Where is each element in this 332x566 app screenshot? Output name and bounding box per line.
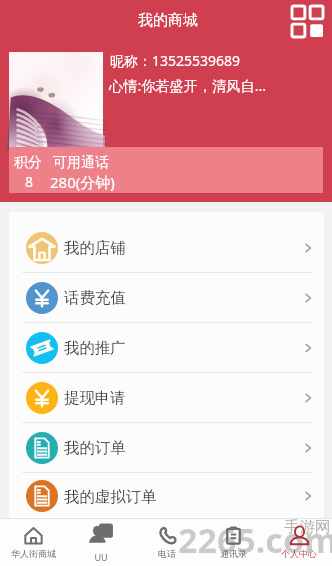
staticText: 通讯录 [220,548,247,559]
button[interactable]: Profile photo [9,52,103,147]
staticText: 我的推广 [64,338,126,357]
button[interactable]: 电话 [134,518,200,566]
button[interactable]: 话费充值 [9,273,324,322]
button[interactable]: 通讯录 [200,518,266,566]
staticText: 积分 [14,154,42,172]
button[interactable]: UU [67,518,134,566]
button[interactable]: 我的虚拟订单 [9,473,324,519]
staticText: 我的订单 [64,438,126,457]
staticText: 我的商城 [2,11,332,30]
staticText: 我的店铺 [64,238,126,257]
button[interactable]: Grid menu [292,6,323,37]
staticText: UU [94,551,108,563]
button[interactable]: 我的订单 [9,423,324,472]
button[interactable]: 个人中心 [266,518,332,566]
staticText: 个人中心 [281,548,317,559]
staticText: 2265.com [178,517,332,563]
staticText: 昵称：13525539689 [110,51,241,70]
staticText: 我的虚拟订单 [64,487,157,506]
staticText: 280(分钟) [50,172,115,192]
staticText: 可用通话 [53,154,109,172]
button[interactable]: 我的推广 [9,323,324,372]
staticText: 提现申请 [64,388,126,407]
button[interactable]: 提现申请 [9,373,324,422]
button[interactable]: 我的店铺 [9,223,324,272]
staticText: 电话 [158,548,176,559]
staticText: 手游网 [284,517,331,537]
button[interactable]: 华人街商城 [0,518,67,566]
staticText: 心情:你若盛开，清风自... [109,76,267,95]
staticText: 话费充值 [64,288,126,307]
staticText: 华人街商城 [11,548,56,559]
staticText: 8 [25,172,34,191]
